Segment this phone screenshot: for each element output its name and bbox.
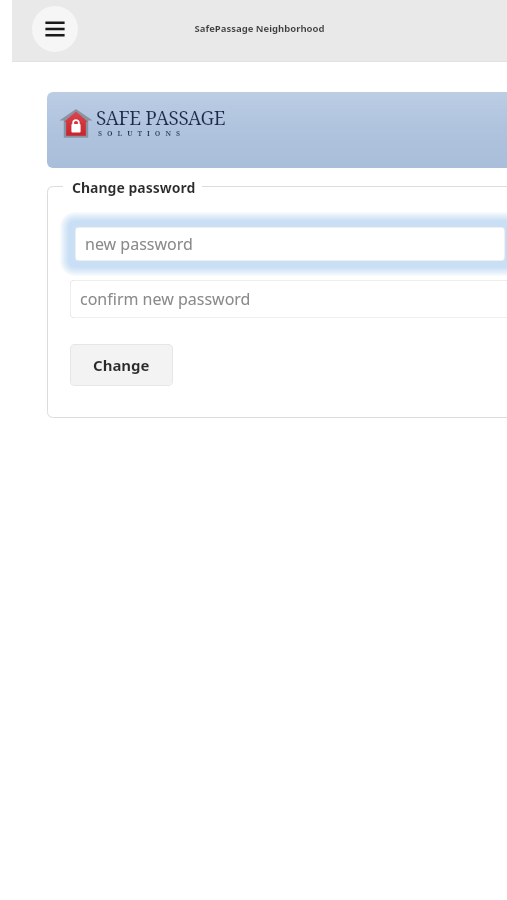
button[interactable]: confirm new password	[70, 280, 507, 318]
button[interactable]: new password	[75, 227, 505, 261]
button[interactable]: Open navigation menu	[32, 6, 78, 52]
staticText: SAFE PASSAGE	[96, 105, 226, 131]
staticText: SafePassage Neighborhood	[12, 22, 507, 35]
staticText: new password	[85, 233, 193, 255]
staticText: S O L U T I O N S	[98, 129, 182, 139]
staticText: Change password	[72, 178, 196, 197]
staticText: confirm new password	[80, 288, 251, 310]
staticText: Change	[93, 355, 150, 375]
button[interactable]: Change	[70, 344, 173, 386]
